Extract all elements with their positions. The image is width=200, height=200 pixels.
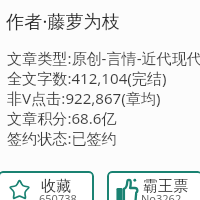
staticText: 作者·藤萝为枝: [6, 9, 120, 34]
staticText: 文章类型:原创-言情-近代现代: [7, 48, 200, 69]
staticText: 霸王票: [143, 177, 188, 196]
staticText: 签约状态:已签约: [7, 128, 117, 149]
staticText: 文章积分:68.6亿: [7, 108, 117, 129]
button[interactable]: 霸王票: [107, 171, 200, 200]
staticText: 非V点击:922,867(章均): [7, 88, 161, 109]
button[interactable]: 收藏: [0, 171, 94, 200]
staticText: No3262: [141, 191, 182, 200]
staticText: 650738: [39, 191, 77, 200]
staticText: 全文字数:412,104(完结): [7, 68, 167, 89]
staticText: 收藏: [41, 177, 71, 196]
